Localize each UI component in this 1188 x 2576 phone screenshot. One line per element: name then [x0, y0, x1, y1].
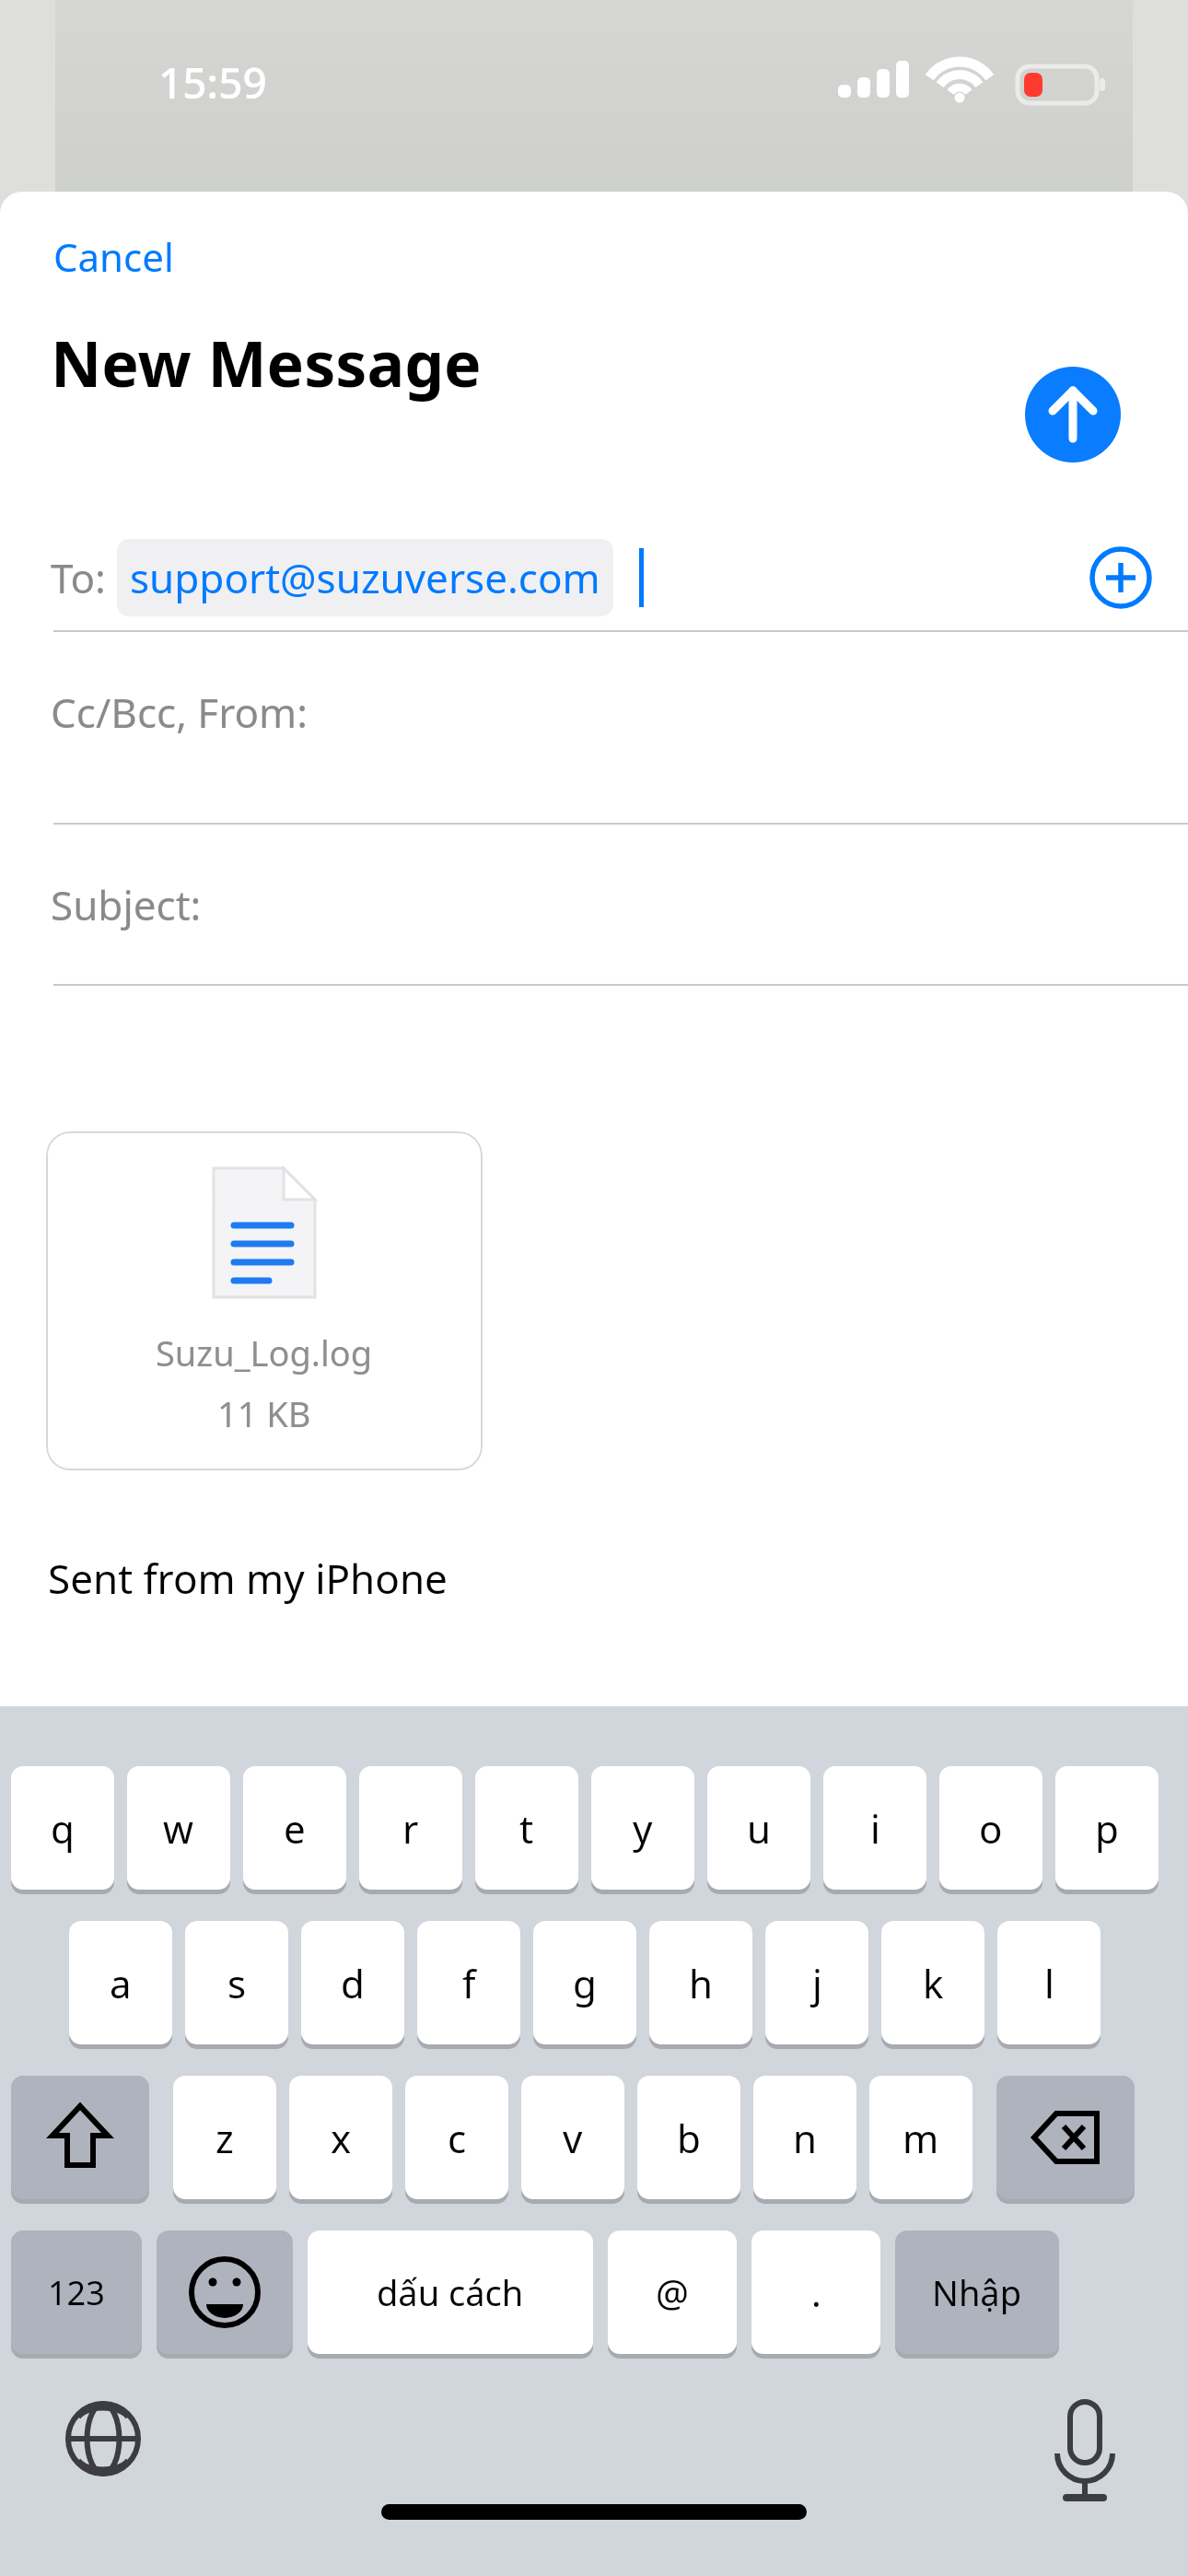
staticText: Subject: [51, 877, 202, 932]
button[interactable]: c [405, 2076, 508, 2199]
staticText: p [1095, 1802, 1119, 1855]
button[interactable]: u [707, 1766, 810, 1890]
staticText: d [341, 1957, 365, 2009]
button[interactable]: j [765, 1921, 868, 2044]
button[interactable]: . [751, 2231, 880, 2354]
staticText: q [51, 1802, 75, 1855]
button[interactable]: e [243, 1766, 346, 1890]
staticText: x [331, 2112, 352, 2164]
staticText: g [573, 1957, 597, 2009]
button[interactable]: Suzu_Log.log [46, 1131, 483, 1470]
staticText: e [284, 1802, 306, 1855]
button[interactable]: h [649, 1921, 752, 2044]
staticText: To: [51, 550, 106, 605]
staticText: m [903, 2112, 939, 2164]
button[interactable]: r [359, 1766, 462, 1890]
button[interactable]: 123 [11, 2231, 142, 2354]
button[interactable]: l [997, 1921, 1101, 2044]
button[interactable]: Add contact [1077, 534, 1164, 621]
button[interactable]: Send [1025, 367, 1121, 463]
staticText: y [633, 1802, 653, 1855]
staticText: c [448, 2112, 467, 2164]
staticText: Suzu_Log.log [156, 1329, 373, 1376]
staticText: support@suzuverse.com [130, 550, 600, 605]
button[interactable]: Shift [11, 2076, 149, 2199]
staticText: j [812, 1957, 822, 2009]
staticText: z [215, 2112, 234, 2164]
staticText: h [689, 1957, 713, 2009]
staticText: k [923, 1957, 944, 2009]
staticText: u [747, 1802, 771, 1855]
button[interactable]: Change keyboard [57, 2393, 149, 2485]
button[interactable]: k [881, 1921, 984, 2044]
button[interactable]: m [869, 2076, 973, 2199]
staticText: b [677, 2112, 701, 2164]
staticText: . [811, 2267, 821, 2317]
button[interactable]: i [823, 1766, 926, 1890]
button[interactable]: Backspace [996, 2076, 1135, 2199]
staticText: 11 KB [217, 1389, 311, 1437]
staticText: v [563, 2112, 583, 2164]
staticText: Cc/Bcc, From: [51, 685, 309, 740]
button[interactable]: Nhập [895, 2231, 1059, 2354]
staticText: n [793, 2112, 817, 2164]
button[interactable]: y [591, 1766, 694, 1890]
staticText: Cancel [53, 230, 174, 283]
button[interactable]: a [69, 1921, 172, 2044]
staticText: t [519, 1802, 534, 1855]
button[interactable]: p [1055, 1766, 1159, 1890]
staticText: @ [656, 2267, 689, 2317]
staticText: 123 [48, 2270, 105, 2315]
staticText: 15:59 [158, 53, 267, 111]
staticText: Sent from my iPhone [48, 1551, 448, 1606]
button[interactable]: z [173, 2076, 276, 2199]
staticText: w [163, 1802, 194, 1855]
button[interactable]: b [637, 2076, 740, 2199]
button[interactable]: Cancel [33, 219, 194, 294]
button[interactable]: d [301, 1921, 404, 2044]
button[interactable]: Subject: [0, 824, 1188, 985]
staticText: a [110, 1957, 132, 2009]
staticText: Nhập [932, 2268, 1022, 2316]
staticText: l [1044, 1957, 1054, 2009]
button[interactable]: t [475, 1766, 578, 1890]
button[interactable]: @ [608, 2231, 737, 2354]
button[interactable]: q [11, 1766, 114, 1890]
button[interactable]: Cc/Bcc, From: [0, 631, 1188, 792]
staticText: o [979, 1802, 1003, 1855]
button[interactable]: dấu cách [308, 2231, 593, 2354]
staticText: s [227, 1957, 247, 2009]
button[interactable]: Emoji [157, 2231, 293, 2354]
button[interactable]: support@suzuverse.com [117, 539, 613, 616]
button[interactable]: v [521, 2076, 624, 2199]
staticText: r [402, 1802, 419, 1855]
button[interactable]: Dictation [1039, 2393, 1131, 2485]
staticText: New Message [51, 320, 482, 405]
button[interactable]: n [753, 2076, 856, 2199]
button[interactable]: o [939, 1766, 1042, 1890]
button[interactable]: g [533, 1921, 636, 2044]
staticText: dấu cách [377, 2268, 524, 2316]
button[interactable]: x [289, 2076, 392, 2199]
button[interactable]: w [127, 1766, 230, 1890]
staticText: f [462, 1957, 476, 2009]
button[interactable]: f [417, 1921, 520, 2044]
staticText: i [870, 1802, 880, 1855]
button[interactable]: s [185, 1921, 288, 2044]
